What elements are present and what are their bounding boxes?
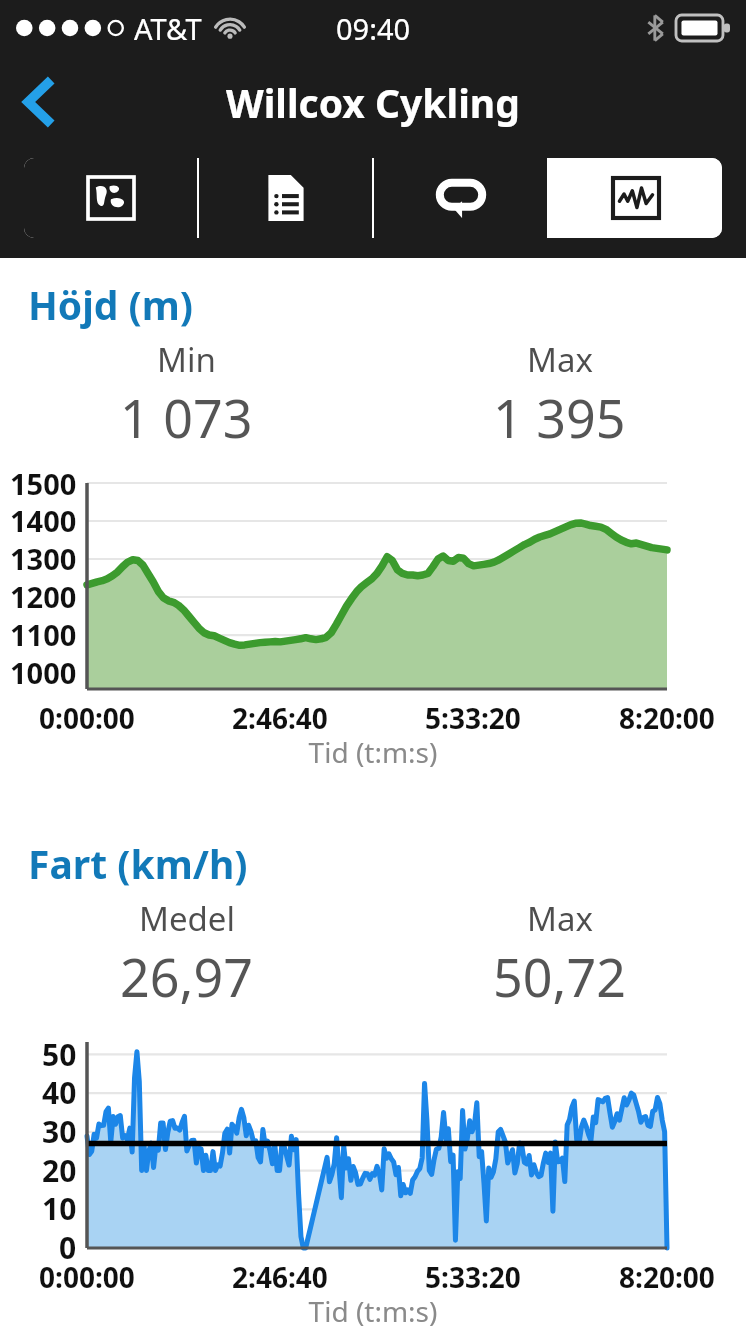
staticText: 1100 xyxy=(10,615,77,654)
staticText: Tid (t:m:s) xyxy=(0,733,746,771)
staticText: Höjd (m) xyxy=(28,278,194,331)
staticText: 8:20:00 xyxy=(619,1258,715,1294)
staticText: 1 395 xyxy=(493,382,626,453)
staticText: 30 xyxy=(42,1111,77,1152)
staticText: 09:40 xyxy=(336,9,411,48)
staticText: 50 xyxy=(42,1034,77,1075)
staticText: 26,97 xyxy=(120,941,253,1012)
staticText: 1400 xyxy=(10,501,77,540)
staticText: Medel xyxy=(139,896,235,941)
staticText: 50,72 xyxy=(493,941,626,1012)
staticText: Tid (t:m:s) xyxy=(0,1292,746,1327)
staticText: Fart (km/h) xyxy=(28,837,248,890)
button[interactable]: Details xyxy=(199,158,372,238)
staticText: 40 xyxy=(42,1072,77,1113)
button[interactable]: Map xyxy=(24,158,197,238)
staticText: Min xyxy=(157,337,216,382)
staticText: 1500 xyxy=(10,464,77,503)
staticText: Max xyxy=(527,337,593,382)
staticText: AT&T xyxy=(134,9,202,48)
staticText: 20 xyxy=(42,1150,77,1191)
staticText: 1200 xyxy=(10,577,77,616)
staticText: Willcox Cykling xyxy=(226,76,520,129)
staticText: 0:00:00 xyxy=(39,1258,135,1294)
staticText: Max xyxy=(527,896,593,941)
staticText: 5:33:20 xyxy=(425,699,521,735)
staticText: 2:46:40 xyxy=(232,1258,328,1294)
staticText: 1000 xyxy=(10,653,77,692)
staticText: 2:46:40 xyxy=(232,699,328,735)
button[interactable]: Graphs xyxy=(549,158,722,238)
staticText: 1300 xyxy=(10,539,77,578)
staticText: 0:00:00 xyxy=(39,699,135,735)
staticText: 8:20:00 xyxy=(619,699,715,735)
button[interactable]: Back xyxy=(0,56,80,148)
staticText: 5:33:20 xyxy=(425,1258,521,1294)
staticText: 10 xyxy=(42,1188,77,1229)
staticText: 0 xyxy=(59,1227,77,1268)
staticText: 1 073 xyxy=(120,382,253,453)
button[interactable]: Laps xyxy=(374,158,547,238)
